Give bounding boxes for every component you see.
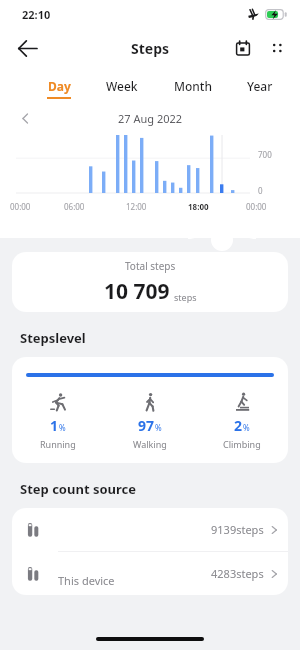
button[interactable]: This device <box>12 552 288 595</box>
staticText: Climbing <box>223 438 261 450</box>
button[interactable]: Year <box>246 78 274 99</box>
staticText: 12:00 <box>126 201 147 212</box>
staticText: % <box>243 422 250 433</box>
staticText: 18:00 <box>188 201 209 212</box>
button[interactable]: Total steps <box>12 252 288 312</box>
staticText: 97 <box>138 416 155 435</box>
staticText: 0 <box>258 185 263 196</box>
button[interactable]: 2 <box>196 392 288 450</box>
staticText: 9139steps <box>211 522 264 537</box>
staticText: 00:00 <box>10 201 31 212</box>
staticText: Walking <box>133 438 167 450</box>
staticText: steps <box>174 291 197 303</box>
button[interactable]: Month <box>173 78 213 99</box>
staticText: 1 <box>50 416 59 435</box>
staticText: Year <box>247 78 273 94</box>
staticText: % <box>59 422 66 433</box>
staticText: 10 709 <box>104 277 170 306</box>
staticText: 4283steps <box>211 566 264 581</box>
button[interactable]: More options <box>260 31 294 65</box>
staticText: 00:00 <box>246 201 267 212</box>
staticText: 27 Aug 2022 <box>118 111 183 126</box>
button[interactable]: 97 <box>104 392 196 450</box>
button[interactable]: Calendar <box>226 31 260 65</box>
staticText: Stepslevel <box>20 329 86 347</box>
staticText: Total steps <box>125 259 176 273</box>
staticText: Week <box>106 78 138 94</box>
button[interactable]: Back <box>8 29 46 67</box>
staticText: This device <box>58 573 115 588</box>
staticText: 700 <box>258 149 272 160</box>
staticText: 22:10 <box>22 7 51 22</box>
staticText: Day <box>48 78 71 94</box>
staticText: Running <box>40 438 76 450</box>
button[interactable]: 9139steps <box>12 508 288 551</box>
button[interactable]: Week <box>105 78 139 99</box>
staticText: 06:00 <box>64 201 85 212</box>
staticText: Steps <box>131 39 170 58</box>
staticText: 2 <box>234 416 243 435</box>
button[interactable]: Day <box>46 78 72 99</box>
button[interactable]: 1 <box>12 392 104 450</box>
staticText: % <box>155 422 162 433</box>
staticText: Month <box>174 78 212 94</box>
button[interactable]: Previous day <box>15 109 35 127</box>
staticText: Step count source <box>20 480 137 498</box>
